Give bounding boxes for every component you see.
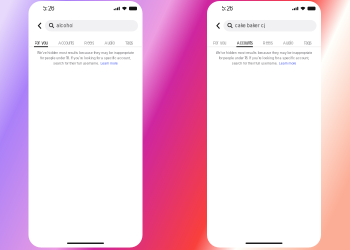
staticText: Audio (283, 40, 293, 45)
staticText: We've hidden most results because they m… (37, 51, 134, 55)
button[interactable]: Reels (263, 40, 273, 47)
button[interactable]: Accounts (236, 40, 253, 47)
staticText: Tags (125, 40, 133, 45)
staticText: Reels (84, 40, 94, 45)
staticText: For you (213, 40, 226, 45)
staticText: Accounts (58, 40, 74, 45)
button[interactable]: Reels (84, 40, 94, 47)
button[interactable]: Learn more (279, 61, 296, 65)
staticText: For you (34, 40, 47, 45)
staticText: for people under 18. If you're looking f… (40, 56, 131, 60)
button[interactable]: Back (213, 20, 223, 31)
button[interactable]: Accounts (58, 40, 74, 47)
staticText: Accounts (237, 40, 253, 45)
button[interactable]: Back (34, 20, 45, 31)
button[interactable]: Audio (283, 40, 293, 47)
staticText: We've hidden most results because they m… (215, 51, 312, 55)
button[interactable]: alcohol (45, 20, 138, 31)
button[interactable]: For you (34, 40, 48, 47)
staticText: search for their full username. (53, 61, 99, 65)
staticText: Audio (104, 40, 114, 45)
staticText: for people under 18. If you're looking f… (219, 56, 309, 60)
staticText: Learn more (279, 61, 296, 65)
button[interactable]: Tags (303, 40, 312, 47)
button[interactable]: For you (212, 40, 226, 47)
staticText: Tags (303, 40, 311, 45)
staticText: Reels (263, 40, 273, 45)
staticText: Learn more (100, 61, 118, 65)
button[interactable]: Tags (124, 40, 133, 47)
staticText: cake baker cj (235, 23, 265, 28)
staticText: 5:26 (43, 5, 54, 12)
button[interactable]: Learn more (100, 61, 118, 65)
button[interactable]: cake baker cj (223, 20, 316, 31)
button[interactable]: Audio (104, 40, 115, 47)
staticText: 5:26 (221, 5, 232, 12)
staticText: alcohol (56, 23, 73, 28)
staticText: search for their full username. (232, 61, 278, 65)
